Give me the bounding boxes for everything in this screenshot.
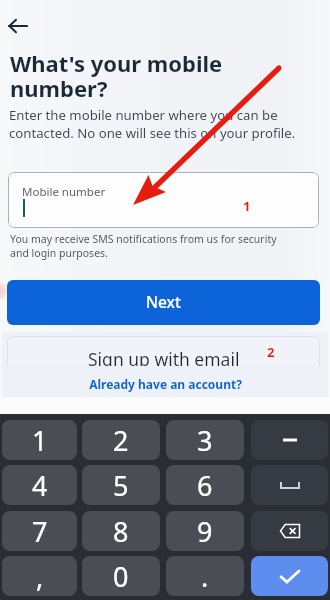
button[interactable]: Backspace — [251, 511, 328, 551]
staticText: 0 — [113, 558, 129, 595]
button[interactable]: 0 — [82, 556, 160, 596]
button[interactable]: 7 — [2, 511, 77, 551]
button[interactable]: 8 — [82, 511, 160, 551]
staticText: What's your mobile number? — [10, 48, 223, 104]
button[interactable]: . — [166, 556, 244, 596]
button[interactable]: , — [2, 556, 77, 596]
button[interactable]: Back — [1, 9, 35, 43]
staticText: 9 — [197, 513, 213, 550]
staticText: 6 — [197, 467, 213, 504]
button[interactable]: 3 — [166, 420, 244, 460]
staticText: You may receive SMS notifications from u… — [10, 232, 277, 260]
button[interactable]: Already have an account? — [87, 374, 244, 394]
button[interactable]: 1 — [2, 420, 77, 460]
staticText: 3 — [197, 422, 213, 459]
button[interactable]: 4 — [2, 465, 77, 505]
button[interactable]: Enter — [251, 556, 328, 596]
button[interactable]: 9 — [166, 511, 244, 551]
staticText: , — [36, 558, 44, 595]
staticText: 1 — [243, 197, 251, 215]
staticText: 1 — [32, 422, 48, 459]
button[interactable]: Dash — [251, 420, 328, 460]
staticText: . — [201, 558, 209, 595]
button[interactable]: 5 — [82, 465, 160, 505]
button[interactable]: 2 — [82, 420, 160, 460]
staticText: Enter the mobile number where you can be… — [9, 106, 296, 142]
staticText: Next — [146, 291, 181, 312]
button[interactable]: 6 — [166, 465, 244, 505]
staticText: 2 — [267, 343, 275, 361]
button[interactable]: Space — [251, 465, 328, 505]
staticText: 8 — [113, 513, 129, 550]
staticText: 7 — [32, 513, 48, 550]
staticText: 4 — [32, 467, 48, 504]
staticText: 5 — [113, 467, 129, 504]
button[interactable]: Next — [7, 280, 320, 325]
button[interactable]: Mobile number — [8, 172, 319, 228]
staticText: 2 — [113, 422, 129, 459]
staticText: Mobile number — [22, 184, 106, 200]
staticText: Sign up with email — [88, 352, 240, 369]
button[interactable]: Sign up with email — [7, 336, 320, 381]
